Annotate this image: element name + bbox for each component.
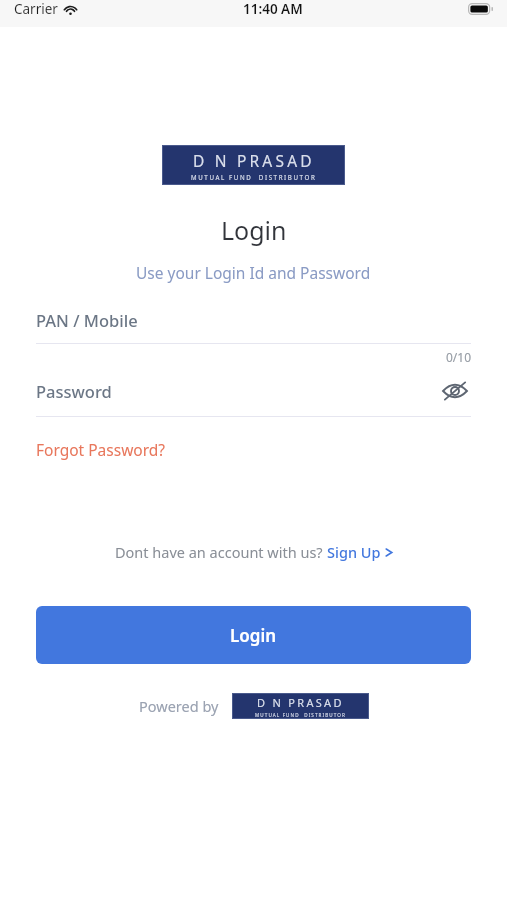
- button[interactable]: Show password: [439, 375, 471, 407]
- button[interactable]: PAN / Mobile: [36, 305, 471, 335]
- staticText: Login: [230, 624, 277, 647]
- button[interactable]: Password: [36, 380, 439, 402]
- staticText: MUTUAL FUND DISTRIBUTOR: [191, 173, 317, 181]
- staticText: D N PRASAD: [193, 150, 315, 171]
- button[interactable]: Forgot Password?: [36, 439, 166, 460]
- staticText: PAN / Mobile: [36, 309, 138, 331]
- staticText: Login: [221, 213, 287, 247]
- staticText: Password: [36, 380, 112, 402]
- button[interactable]: Sign Up: [327, 542, 393, 562]
- staticText: 0/10: [36, 349, 471, 365]
- staticText: Forgot Password?: [36, 439, 166, 460]
- staticText: D N PRASAD: [257, 695, 344, 710]
- staticText: Powered by: [139, 696, 219, 716]
- button[interactable]: Login: [36, 606, 471, 664]
- staticText: MUTUAL FUND DISTRIBUTOR: [255, 712, 346, 718]
- staticText: Dont have an account with us?: [115, 542, 327, 562]
- staticText: Carrier: [14, 0, 58, 18]
- staticText: Sign Up: [327, 542, 381, 562]
- staticText: Use your Login Id and Password: [136, 262, 371, 283]
- staticText: 11:40 AM: [243, 0, 303, 18]
